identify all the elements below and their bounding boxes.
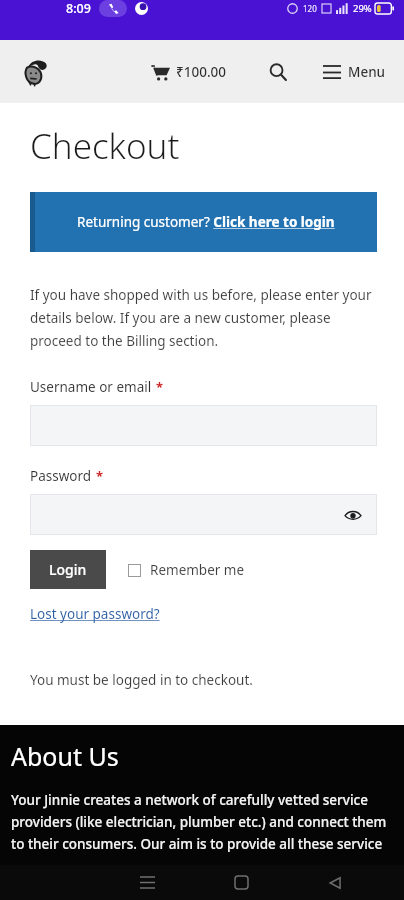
button[interactable]: Remember me bbox=[128, 555, 245, 585]
button[interactable]: ₹100.00 bbox=[147, 57, 231, 87]
button[interactable]: Back bbox=[313, 865, 357, 900]
staticText: Checkout bbox=[30, 122, 180, 170]
staticText: ₹100.00 bbox=[176, 63, 227, 81]
button[interactable]: Recent apps bbox=[125, 865, 169, 900]
button[interactable]: Home bbox=[219, 865, 263, 900]
staticText: 8:09 bbox=[66, 0, 91, 17]
staticText: If you have shopped with us before, plea… bbox=[30, 286, 378, 350]
staticText: Password bbox=[30, 467, 92, 485]
staticText: You must be logged in to checkout. bbox=[30, 671, 253, 689]
button[interactable] bbox=[30, 405, 377, 446]
button[interactable]: Menu bbox=[319, 57, 390, 87]
button[interactable]: Lost your password? bbox=[30, 605, 160, 623]
button[interactable]: Show password bbox=[343, 505, 363, 525]
button[interactable]: Your Jinnie home bbox=[14, 50, 58, 94]
staticText: Your Jinnie creates a network of careful… bbox=[11, 791, 396, 853]
staticText: Returning customer? Click here to login bbox=[77, 213, 335, 231]
staticText: Remember me bbox=[150, 561, 245, 579]
button[interactable]: Search bbox=[261, 55, 295, 89]
staticText: 29% bbox=[353, 2, 372, 15]
staticText: * bbox=[156, 378, 164, 396]
button[interactable]: Returning customer? Click here to login bbox=[30, 192, 377, 252]
button[interactable]: Login bbox=[30, 550, 106, 589]
staticText: About Us bbox=[11, 739, 119, 773]
staticText: 120 bbox=[303, 3, 317, 14]
staticText: Menu bbox=[348, 63, 386, 81]
staticText: Username or email bbox=[30, 378, 152, 396]
staticText: Lost your password? bbox=[30, 605, 160, 623]
button[interactable]: Show password bbox=[30, 494, 377, 535]
staticText: * bbox=[96, 467, 104, 485]
staticText: Login bbox=[49, 560, 87, 579]
